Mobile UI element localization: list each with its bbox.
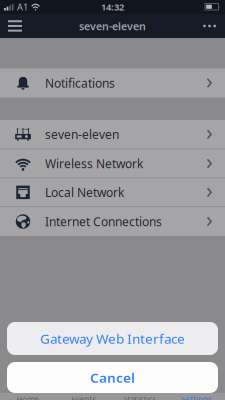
button[interactable]: Notifications — [0, 68, 225, 97]
button[interactable]: Gateway Web Interface — [7, 322, 218, 355]
button[interactable]: Statistics — [112, 393, 168, 400]
staticText: Events — [71, 394, 96, 400]
staticText: Settings — [181, 394, 212, 400]
button[interactable]: seven-eleven — [0, 120, 225, 149]
staticText: Home — [16, 394, 39, 400]
staticText: Internet Connections — [45, 214, 162, 229]
staticText: Notifications — [45, 75, 115, 91]
staticText: A1 — [17, 1, 28, 13]
button[interactable]: Local Network — [0, 178, 225, 206]
staticText: 14:32 — [101, 1, 124, 13]
staticText: seven-eleven — [45, 126, 119, 142]
staticText: seven-eleven — [79, 19, 146, 33]
staticText: Wireless Network — [45, 156, 143, 171]
button[interactable]: Menu — [0, 20, 22, 32]
staticText: Local Network — [45, 184, 124, 200]
button[interactable]: More — [203, 25, 225, 27]
staticText: Gateway Web Interface — [40, 330, 185, 347]
button[interactable]: Internet Connections — [0, 207, 225, 236]
button[interactable]: Settings — [168, 393, 225, 400]
staticText: Statistics — [123, 394, 156, 400]
button[interactable]: Events — [56, 393, 112, 400]
button[interactable]: Wireless Network — [0, 150, 225, 178]
staticText: Cancel — [90, 369, 135, 386]
button[interactable]: Cancel — [7, 362, 218, 393]
button[interactable]: Home — [0, 393, 56, 400]
